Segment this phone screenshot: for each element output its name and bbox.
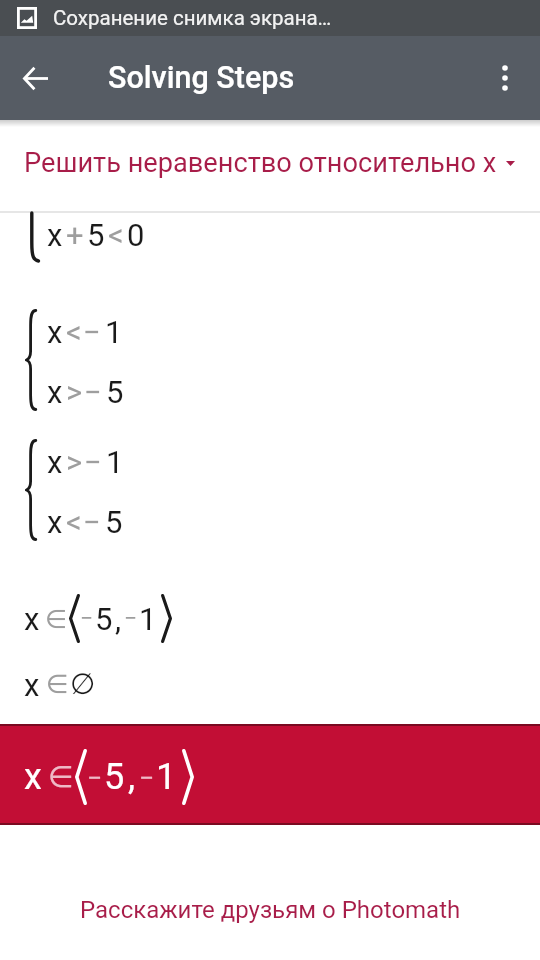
staticText: 5 (105, 504, 123, 538)
staticText: x (47, 374, 63, 408)
staticText: x (47, 314, 63, 348)
staticText: 1 (156, 756, 177, 798)
staticText: − (83, 504, 101, 538)
staticText: 5 (95, 601, 113, 637)
staticText: x (47, 444, 63, 478)
staticText: < (108, 217, 124, 251)
staticText: − (87, 762, 103, 793)
staticText: 0 (127, 217, 145, 251)
staticText: , (128, 756, 136, 798)
staticText: Решить неравенство относительно x (24, 147, 497, 179)
staticText: > (66, 444, 83, 478)
staticText: − (124, 605, 138, 632)
staticText: Сохранение снимка экрана… (53, 6, 332, 30)
staticText: Расскажите друзьям о Photomath (80, 896, 461, 924)
staticText: > (66, 374, 83, 408)
staticText: 5 (104, 756, 125, 798)
button[interactable]: More options (476, 49, 534, 107)
staticText: − (84, 444, 102, 478)
staticText: − (80, 605, 94, 632)
staticText: x (47, 217, 63, 251)
staticText: ∈ (45, 604, 68, 634)
staticText: , (115, 601, 122, 637)
staticText: ∈ (46, 669, 69, 699)
button[interactable]: Расскажите друзьям о Photomath (0, 882, 540, 938)
staticText: 5 (87, 217, 105, 251)
staticText: 1 (105, 314, 123, 348)
staticText: Solving Steps (108, 60, 295, 96)
staticText: 1 (139, 601, 157, 637)
button[interactable]: Back (8, 50, 64, 106)
staticText: x (24, 601, 40, 637)
staticText: < (66, 504, 82, 538)
staticText: − (84, 374, 102, 408)
staticText: ∈ (48, 760, 74, 794)
staticText: x (24, 667, 40, 701)
staticText: < (66, 314, 82, 348)
button[interactable]: Решить неравенство относительно x (0, 136, 540, 190)
staticText: ∅ (70, 667, 96, 701)
staticText: x (47, 504, 63, 538)
staticText: + (66, 217, 84, 251)
staticText: 1 (106, 444, 124, 478)
staticText: − (139, 762, 155, 793)
staticText: x (24, 756, 42, 798)
staticText: 5 (106, 374, 124, 408)
staticText: − (83, 314, 101, 348)
